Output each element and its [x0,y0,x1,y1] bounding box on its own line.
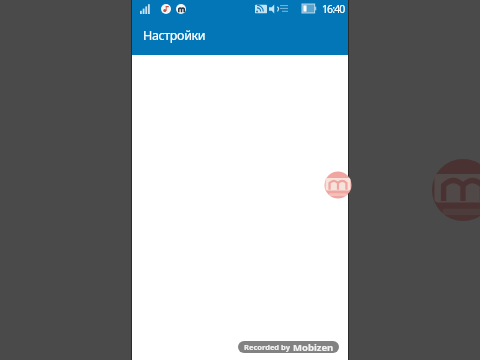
other: Screen casting [255,4,267,15]
staticText: Recorded by [244,342,290,352]
other: Notifications [280,5,288,13]
other: Mobile signal strength [140,4,151,14]
staticText: 16:40 [322,2,345,16]
other: Volume [269,4,278,14]
staticText: Mobizen [293,341,334,353]
other: Music playing [161,4,171,14]
other: Mobizen recording [176,4,186,14]
button[interactable]: Настройки [132,18,348,55]
other: Battery [302,4,316,13]
staticText: Настройки [143,27,206,44]
